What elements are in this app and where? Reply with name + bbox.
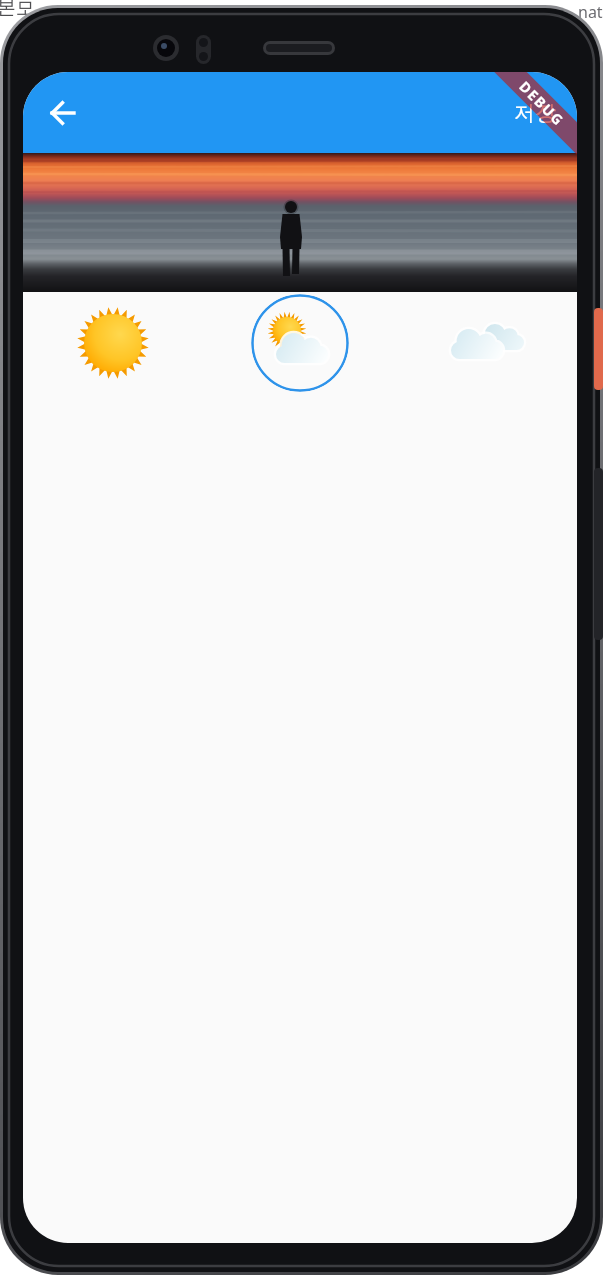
button[interactable] — [447, 305, 523, 381]
staticText: nat — [578, 1, 603, 23]
staticText: DEBUG — [515, 77, 568, 130]
button[interactable] — [39, 89, 87, 137]
button[interactable]: 저장 — [514, 100, 556, 126]
button[interactable] — [75, 305, 151, 381]
button[interactable] — [251, 294, 349, 392]
staticText: 저장 — [514, 100, 556, 126]
staticText: 본모 — [0, 0, 35, 20]
